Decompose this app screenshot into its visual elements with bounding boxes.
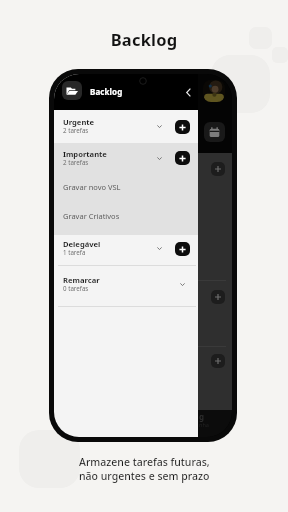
staticText: nha	[199, 421, 209, 428]
button[interactable]: Add	[211, 290, 225, 304]
button[interactable]: Add	[211, 162, 225, 176]
button[interactable]: Profile	[203, 80, 225, 102]
staticText: Delegável	[63, 239, 101, 249]
staticText: 0 tarefas	[63, 284, 89, 292]
staticText: 2 tarefas	[63, 158, 89, 166]
button[interactable]: Remarcar	[54, 267, 198, 301]
button[interactable]: Add task	[175, 151, 190, 165]
staticText: Gravar Criativos	[63, 211, 120, 221]
button[interactable]: Folder	[62, 81, 82, 100]
staticText: Urgente	[63, 117, 95, 127]
staticText: Importante	[63, 149, 107, 159]
button[interactable]: Add	[211, 354, 225, 368]
button[interactable]: Back	[182, 85, 194, 99]
button[interactable]: Gravar novo VSL	[54, 172, 198, 201]
staticText: Gravar novo VSL	[63, 182, 121, 192]
button[interactable]: Calendar	[204, 122, 225, 142]
staticText: Remarcar	[63, 275, 100, 285]
button[interactable]: Delegável	[54, 233, 198, 264]
staticText: g	[199, 411, 205, 422]
staticText: 1 tarefa	[63, 248, 86, 256]
button[interactable]: Add task	[175, 242, 190, 256]
staticText: Armazene tarefas futuras,	[79, 455, 210, 469]
button[interactable]: Gravar Criativos	[54, 201, 198, 230]
button[interactable]: Add task	[175, 120, 190, 134]
staticText: não urgentes e sem prazo	[79, 469, 210, 483]
staticText: 2 tarefas	[63, 126, 89, 134]
staticText: Backlog	[0, 28, 288, 50]
button[interactable]: Urgente	[54, 110, 198, 143]
button[interactable]: Importante	[54, 143, 198, 173]
staticText: Backlog	[90, 86, 123, 97]
